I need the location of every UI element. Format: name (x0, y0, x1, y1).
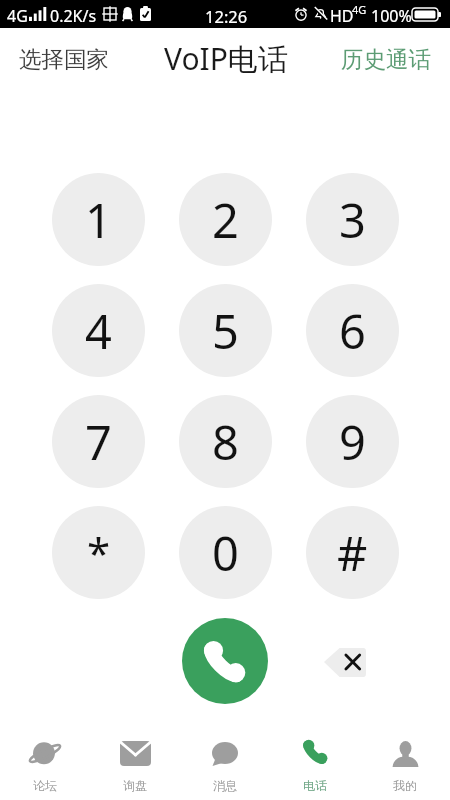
staticText: 3 (339, 188, 366, 252)
staticText: # (337, 521, 368, 585)
staticText: 0 (212, 521, 239, 585)
staticText: 电话 (303, 778, 327, 793)
staticText: 4 (85, 299, 112, 363)
staticText: 我的 (393, 778, 417, 793)
button[interactable]: 2 (179, 173, 272, 266)
button[interactable]: 7 (52, 395, 145, 488)
button[interactable]: Backspace (316, 637, 374, 687)
staticText: 9 (339, 410, 366, 474)
staticText: 6 (339, 299, 366, 363)
button[interactable]: 历史通话 (331, 36, 450, 82)
staticText: 12:26 (205, 5, 248, 27)
staticText: 选择国家 (19, 45, 109, 73)
button[interactable]: 3 (306, 173, 399, 266)
button[interactable]: 8 (179, 395, 272, 488)
staticText: 4G (7, 5, 28, 27)
button[interactable]: 0 (179, 506, 272, 599)
staticText: 2 (212, 188, 239, 252)
staticText: 论坛 (33, 778, 57, 793)
staticText: 0.2K/s (50, 5, 97, 27)
button[interactable]: 论坛 (0, 720, 90, 800)
staticText: 8 (212, 410, 239, 474)
staticText: 历史通话 (341, 45, 431, 73)
button[interactable]: 1 (52, 173, 145, 266)
staticText: 5 (212, 299, 239, 363)
button[interactable]: 5 (179, 284, 272, 377)
button[interactable]: 9 (306, 395, 399, 488)
button[interactable]: 消息 (180, 720, 270, 800)
staticText: HD (330, 5, 354, 27)
staticText: VoIP电话 (164, 38, 288, 79)
button[interactable]: 选择国家 (0, 36, 119, 82)
staticText: 4G (352, 2, 367, 17)
staticText: 询盘 (123, 778, 147, 793)
button[interactable]: 6 (306, 284, 399, 377)
button[interactable]: 电话 (270, 720, 360, 800)
staticText: * (87, 524, 111, 581)
staticText: 1 (85, 188, 112, 252)
staticText: 100% (371, 5, 412, 27)
button[interactable]: 询盘 (90, 720, 180, 800)
staticText: 消息 (213, 778, 237, 793)
button[interactable]: 4 (52, 284, 145, 377)
button[interactable]: # (306, 506, 399, 599)
staticText: 7 (85, 410, 112, 474)
button[interactable]: * (52, 506, 145, 599)
button[interactable]: 我的 (360, 720, 450, 800)
button[interactable]: Call (182, 618, 268, 704)
